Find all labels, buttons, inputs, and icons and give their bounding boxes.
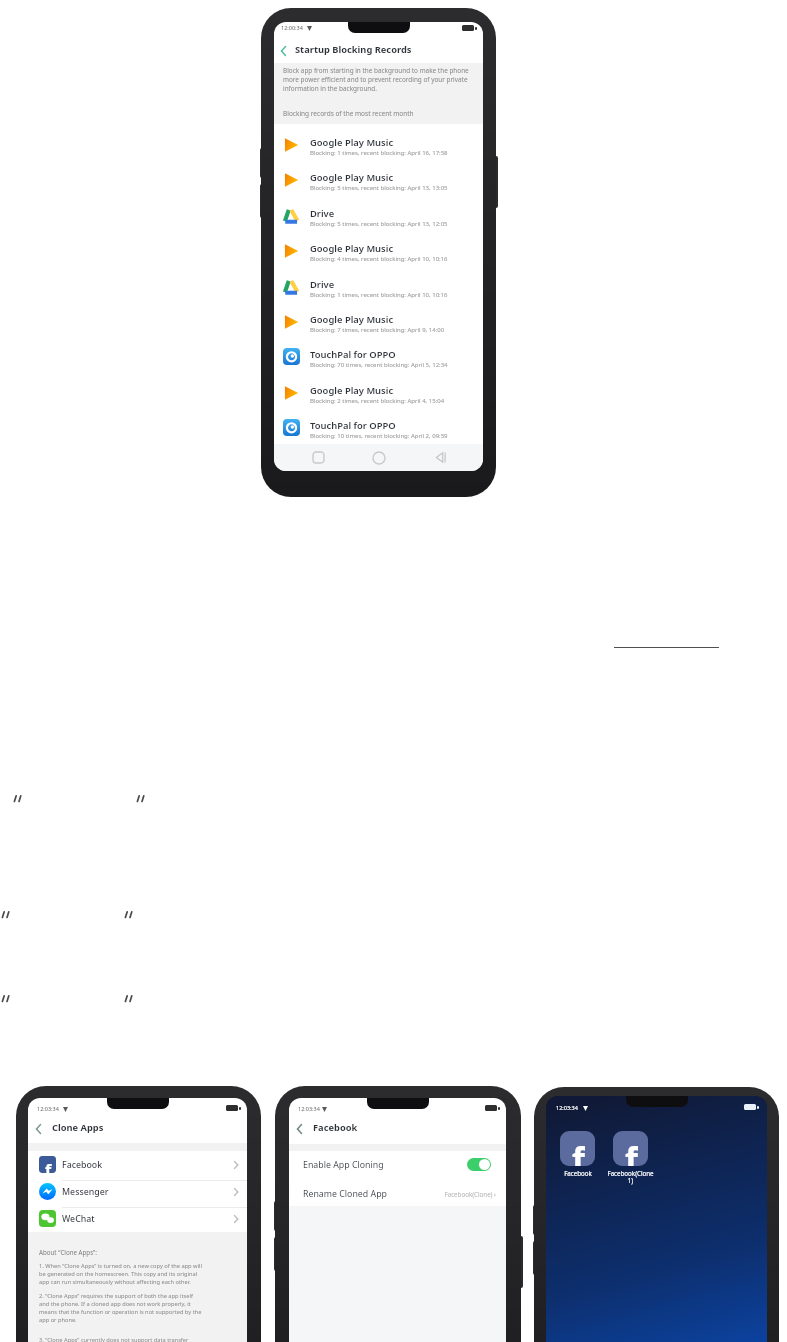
button[interactable]: TouchPal for OPPO [278, 348, 479, 380]
button[interactable]: Messenger [28, 1180, 247, 1207]
staticText: Blocking: 2 times, recent blocking: Apri… [310, 397, 445, 405]
staticText: TouchPal for OPPO [310, 419, 396, 432]
staticText: Block app from starting in the backgroun… [283, 66, 469, 93]
button[interactable]: Google Play Music [278, 384, 479, 416]
button[interactable]: Google Play Music [278, 136, 479, 168]
button[interactable] [305, 444, 331, 471]
staticText: WeChat [62, 1213, 95, 1225]
staticText: Facebook [556, 1169, 600, 1177]
button[interactable] [427, 444, 453, 471]
button[interactable]: Rename Cloned App [289, 1180, 506, 1206]
button[interactable]: TouchPal for OPPO [278, 419, 479, 451]
staticText: 12:03:34 [298, 1105, 320, 1112]
staticText: Startup Blocking Records [295, 43, 412, 56]
staticText: Facebook(Clone) › [411, 1190, 496, 1198]
staticText: Messenger [62, 1186, 109, 1198]
staticText: Facebook(Clone 1) [605, 1169, 656, 1185]
staticText: Google Play Music [310, 171, 394, 184]
staticText: 2. “Clone Apps” requires the support of … [39, 1292, 202, 1324]
staticText: Blocking: 5 times, recent blocking: Apri… [310, 184, 448, 192]
staticText: Blocking: 4 times, recent blocking: Apri… [310, 255, 448, 263]
staticText: Blocking: 10 times, recent blocking: Apr… [310, 432, 448, 440]
button[interactable]: f [28, 1153, 247, 1180]
button[interactable]: f [560, 1131, 595, 1166]
staticText: Blocking records of the most recent mont… [283, 109, 414, 118]
button[interactable] [33, 1123, 45, 1135]
staticText: TouchPal for OPPO [310, 348, 396, 361]
staticText: f [625, 1136, 638, 1166]
staticText: Blocking: 5 times, recent blocking: Apri… [310, 220, 448, 228]
staticText: 12:03:34 [37, 1105, 59, 1112]
button[interactable] [294, 1123, 306, 1135]
staticText: Drive [310, 278, 335, 291]
staticText: 12:03:34 [556, 1104, 578, 1111]
staticText: 12:00:34 [281, 24, 303, 31]
staticText: About “Clone Apps”: [39, 1248, 97, 1256]
button[interactable]: f [613, 1131, 648, 1166]
staticText: Blocking: 1 times, recent blocking: Apri… [310, 291, 448, 299]
staticText: Blocking: 1 times, recent blocking: Apri… [310, 149, 448, 157]
button[interactable]: Google Play Music [278, 242, 479, 274]
staticText: Google Play Music [310, 384, 394, 397]
staticText: Rename Cloned App [303, 1188, 387, 1200]
staticText: Facebook [62, 1159, 103, 1171]
button[interactable] [467, 1158, 491, 1171]
button[interactable]: Enable App Cloning [289, 1152, 506, 1180]
button[interactable]: Google Play Music [278, 313, 479, 345]
staticText: Drive [310, 207, 335, 220]
staticText: 3. “Clone Apps” currently does not suppo… [39, 1336, 189, 1342]
staticText: Facebook [313, 1121, 358, 1134]
staticText: Google Play Music [310, 242, 394, 255]
button[interactable] [366, 444, 392, 471]
staticText: Clone Apps [52, 1121, 104, 1134]
button[interactable]: WeChat [28, 1207, 247, 1234]
staticText: Enable App Cloning [303, 1159, 384, 1171]
button[interactable]: Google Play Music [278, 171, 479, 203]
staticText: 1. When “Clone Apps” is turned on, a new… [39, 1262, 202, 1286]
staticText: f [45, 1159, 52, 1173]
staticText: Google Play Music [310, 136, 394, 149]
button[interactable] [278, 45, 290, 57]
button[interactable]: Drive [278, 278, 479, 310]
staticText: f [572, 1136, 585, 1166]
staticText: Google Play Music [310, 313, 394, 326]
button[interactable]: Drive [278, 207, 479, 239]
staticText: Blocking: 7 times, recent blocking: Apri… [310, 326, 445, 334]
staticText: Blocking: 70 times, recent blocking: Apr… [310, 361, 448, 369]
